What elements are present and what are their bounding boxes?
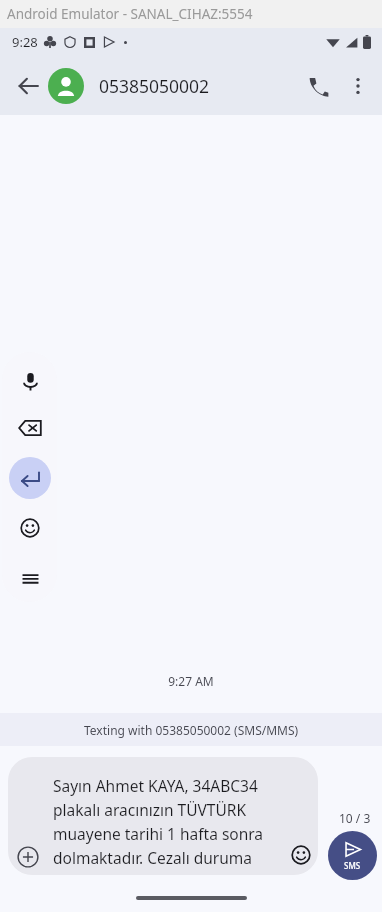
staticText: Sayın Ahmet KAYA, 34ABC34 bbox=[53, 775, 258, 796]
button[interactable]: Back bbox=[6, 64, 50, 108]
staticText: Texting with 05385050002 (SMS/MMS) bbox=[84, 722, 299, 738]
button[interactable]: Enter bbox=[9, 457, 51, 499]
staticText: plakalı aracınızın TÜVTÜRK bbox=[53, 799, 247, 820]
button[interactable]: Send SMS bbox=[328, 831, 377, 880]
staticText: 9:27 AM bbox=[0, 673, 382, 689]
staticText: Android Emulator - SANAL_CIHAZ:5554 bbox=[7, 5, 253, 23]
button[interactable]: Keyboard menu bbox=[10, 558, 50, 598]
button[interactable]: Add attachment bbox=[9, 838, 47, 876]
button[interactable]: Contact avatar bbox=[48, 68, 84, 104]
staticText: 05385050002 bbox=[99, 74, 210, 98]
button[interactable]: More options bbox=[336, 64, 380, 108]
staticText: SMS bbox=[344, 860, 361, 871]
button[interactable]: Call bbox=[296, 64, 340, 108]
staticText: 10 / 3 bbox=[339, 810, 371, 826]
staticText: 9:28 bbox=[12, 33, 38, 51]
button[interactable]: Emoji bbox=[284, 838, 318, 872]
staticText: muayene tarihi 1 hafta sonra bbox=[53, 823, 264, 844]
button[interactable]: Voice input bbox=[10, 361, 50, 401]
staticText: dolmaktadır. Cezalı duruma bbox=[53, 847, 252, 868]
button[interactable]: Emoji keyboard bbox=[10, 508, 50, 548]
button[interactable]: Backspace bbox=[10, 408, 50, 448]
button[interactable] bbox=[8, 757, 318, 875]
